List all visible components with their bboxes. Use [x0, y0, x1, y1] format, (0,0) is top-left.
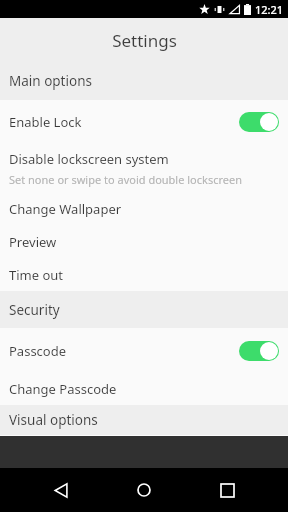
button[interactable]: Back	[39, 468, 83, 512]
button[interactable]: Passcode	[0, 328, 288, 373]
staticText: Preview	[9, 233, 57, 251]
staticText: Security	[9, 301, 60, 319]
button[interactable]: Recent apps	[205, 468, 249, 512]
button[interactable]: Home	[122, 468, 166, 512]
button[interactable]: Change Passcode	[0, 373, 288, 405]
button[interactable]: Disable lockscreen system	[0, 144, 288, 192]
button[interactable]: Enable Lock	[0, 100, 288, 144]
other: Toggle Passcode	[239, 341, 279, 361]
staticText: Time out	[9, 266, 64, 284]
staticText: Set none or swipe to avoid double locksc…	[9, 172, 243, 187]
button[interactable]: Change Wallpaper	[0, 192, 288, 225]
staticText: Main options	[9, 72, 92, 90]
staticText: Disable lockscreen system	[9, 150, 169, 168]
staticText: Change Passcode	[9, 380, 117, 398]
staticText: 12:21	[255, 2, 284, 17]
staticText: Passcode	[9, 342, 67, 360]
staticText: Change Wallpaper	[9, 200, 122, 218]
other: Toggle Enable Lock	[239, 112, 279, 132]
button[interactable]: Preview	[0, 225, 288, 258]
staticText: Settings	[112, 29, 177, 52]
staticText: Visual options	[9, 411, 98, 429]
staticText: Enable Lock	[9, 113, 82, 131]
button[interactable]: Time out	[0, 258, 288, 291]
